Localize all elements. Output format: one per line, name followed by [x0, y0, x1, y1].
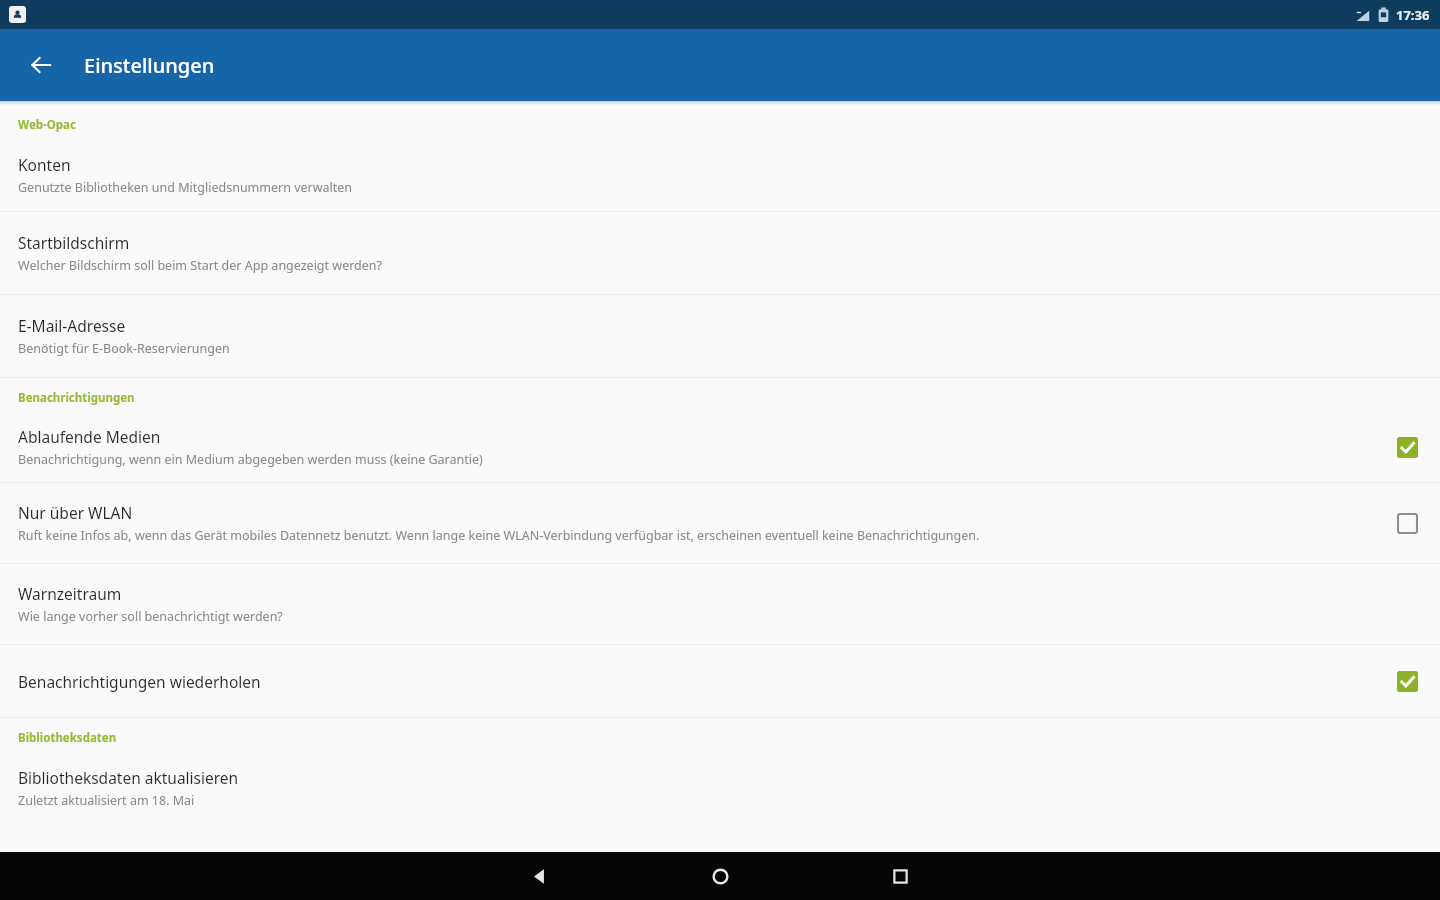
staticText: Bibliotheksdaten aktualisieren — [18, 767, 239, 788]
staticText: Benachrichtigungen wiederholen — [18, 671, 261, 692]
staticText: Benötigt für E-Book-Reservierungen — [18, 340, 230, 357]
button[interactable]: Warnzeitraum — [0, 564, 1440, 644]
staticText: Konten — [18, 154, 71, 175]
button[interactable]: Konten — [0, 139, 1440, 211]
staticText: Benachrichtigungen — [18, 390, 135, 406]
staticText: Bibliotheksdaten — [18, 730, 117, 746]
staticText: Welcher Bildschirm soll beim Start der A… — [18, 257, 382, 274]
button[interactable]: Zurück — [16, 40, 66, 90]
button[interactable]: Nur über WLAN — [0, 483, 1440, 563]
staticText: Nur über WLAN — [18, 502, 133, 523]
staticText: Wie lange vorher soll benachrichtigt wer… — [18, 608, 283, 625]
staticText: Startbildschirm — [18, 232, 130, 253]
button[interactable]: Startseite — [630, 852, 810, 900]
button[interactable]: Letzte Apps — [810, 852, 990, 900]
button[interactable]: Bibliotheksdaten aktualisieren — [0, 752, 1440, 824]
staticText: 17:36 — [1396, 6, 1430, 24]
button[interactable]: Ablaufende Medien — [0, 412, 1440, 482]
staticText: Benachrichtigung, wenn ein Medium abgege… — [18, 451, 483, 468]
staticText: E-Mail-Adresse — [18, 315, 126, 336]
button[interactable]: E-Mail-Adresse — [0, 295, 1440, 377]
staticText: Web-Opac — [18, 117, 76, 133]
button[interactable]: Startbildschirm — [0, 212, 1440, 294]
staticText: Ablaufende Medien — [18, 426, 161, 447]
staticText: Einstellungen — [84, 52, 215, 79]
staticText: Warnzeitraum — [18, 583, 122, 604]
button[interactable]: Zurück — [450, 852, 630, 900]
button[interactable]: Benachrichtigungen wiederholen — [0, 645, 1440, 717]
staticText: Zuletzt aktualisiert am 18. Mai — [18, 792, 195, 809]
staticText: Ruft keine Infos ab, wenn das Gerät mobi… — [18, 527, 980, 544]
staticText: Genutzte Bibliotheken und Mitgliedsnumme… — [18, 179, 353, 196]
